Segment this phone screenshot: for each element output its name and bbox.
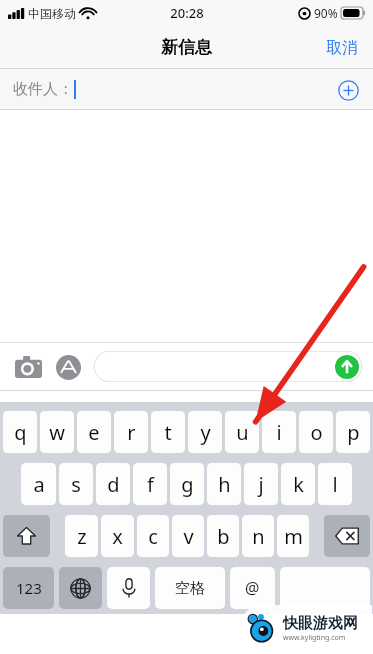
button[interactable]: g bbox=[170, 463, 204, 505]
staticText: k bbox=[293, 471, 304, 498]
button[interactable]: s bbox=[59, 463, 93, 505]
button[interactable]: @ bbox=[230, 567, 275, 609]
staticText: m bbox=[284, 523, 303, 550]
staticText: 新信息 bbox=[161, 37, 212, 58]
staticText: w bbox=[49, 419, 65, 446]
staticText: e bbox=[88, 419, 100, 446]
staticText: j bbox=[258, 471, 264, 498]
button[interactable]: 123 bbox=[3, 567, 54, 609]
staticText: f bbox=[147, 471, 154, 498]
staticText: v bbox=[183, 523, 194, 550]
button[interactable]: Send bbox=[334, 354, 360, 380]
button[interactable]: c bbox=[137, 515, 169, 557]
button[interactable]: q bbox=[3, 411, 37, 453]
staticText: a bbox=[33, 471, 45, 498]
staticText: 中国移动 bbox=[28, 6, 76, 21]
staticText: 快眼游戏网 bbox=[283, 614, 358, 633]
staticText: n bbox=[252, 523, 265, 550]
button[interactable]: Switch keyboard bbox=[59, 567, 102, 609]
staticText: 90% bbox=[314, 5, 338, 21]
staticText: b bbox=[217, 523, 230, 550]
button[interactable]: Send bbox=[94, 351, 362, 382]
staticText: l bbox=[332, 471, 338, 498]
staticText: 123 bbox=[16, 578, 42, 598]
button[interactable]: Voice input bbox=[107, 567, 150, 609]
button[interactable]: 空格 bbox=[155, 567, 225, 609]
button[interactable]: y bbox=[188, 411, 222, 453]
staticText: h bbox=[218, 471, 231, 498]
staticText: y bbox=[200, 419, 211, 446]
staticText: 20:28 bbox=[170, 4, 204, 22]
button[interactable]: t bbox=[151, 411, 185, 453]
staticText: s bbox=[71, 471, 81, 498]
button[interactable]: l bbox=[318, 463, 352, 505]
button[interactable]: i bbox=[262, 411, 296, 453]
button[interactable]: z bbox=[65, 515, 98, 557]
staticText: 收件人： bbox=[13, 80, 73, 99]
button[interactable]: b bbox=[207, 515, 239, 557]
button[interactable]: f bbox=[133, 463, 167, 505]
button[interactable]: w bbox=[40, 411, 74, 453]
staticText: z bbox=[77, 523, 87, 550]
staticText: t bbox=[164, 419, 172, 446]
staticText: i bbox=[276, 419, 282, 446]
button[interactable]: p bbox=[336, 411, 370, 453]
button[interactable]: m bbox=[277, 515, 309, 557]
button[interactable]: x bbox=[101, 515, 134, 557]
button[interactable]: d bbox=[96, 463, 130, 505]
button[interactable]: r bbox=[114, 411, 148, 453]
button[interactable]: k bbox=[281, 463, 315, 505]
button[interactable]: o bbox=[299, 411, 333, 453]
staticText: r bbox=[127, 419, 136, 446]
staticText: @ bbox=[245, 577, 260, 599]
button[interactable]: Camera bbox=[11, 350, 45, 384]
button[interactable]: 取消 bbox=[311, 30, 373, 66]
staticText: www.kyligting.com bbox=[283, 633, 346, 643]
button[interactable]: e bbox=[77, 411, 111, 453]
staticText: p bbox=[347, 419, 360, 446]
button[interactable]: Backspace bbox=[324, 515, 370, 557]
staticText: x bbox=[112, 523, 123, 550]
button[interactable]: h bbox=[207, 463, 241, 505]
button[interactable]: j bbox=[244, 463, 278, 505]
staticText: o bbox=[310, 419, 323, 446]
staticText: 空格 bbox=[175, 579, 205, 598]
staticText: 取消 bbox=[326, 38, 358, 58]
button[interactable]: App Store bbox=[52, 351, 84, 383]
staticText: q bbox=[14, 419, 27, 446]
staticText: g bbox=[181, 471, 194, 498]
button[interactable]: u bbox=[225, 411, 259, 453]
button[interactable]: Add contact bbox=[333, 75, 363, 105]
button[interactable]: v bbox=[172, 515, 204, 557]
staticText: u bbox=[236, 419, 249, 446]
staticText: d bbox=[107, 471, 120, 498]
staticText: c bbox=[148, 523, 158, 550]
button[interactable]: n bbox=[242, 515, 274, 557]
button[interactable]: a bbox=[21, 463, 56, 505]
button[interactable]: Shift bbox=[3, 515, 50, 557]
